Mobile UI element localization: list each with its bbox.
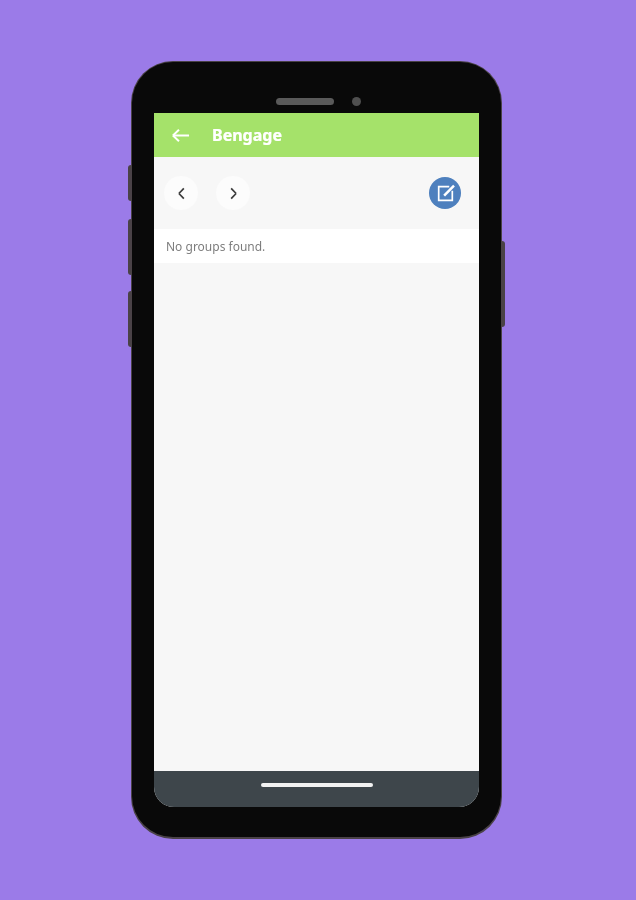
button[interactable]: Next	[216, 176, 250, 210]
button[interactable]: Compose	[429, 177, 461, 209]
button[interactable]: No groups found.	[154, 229, 479, 263]
staticText: No groups found.	[166, 238, 266, 254]
button[interactable]: Back	[162, 117, 198, 153]
staticText: Bengage	[212, 124, 282, 146]
button[interactable]: Previous	[164, 176, 198, 210]
